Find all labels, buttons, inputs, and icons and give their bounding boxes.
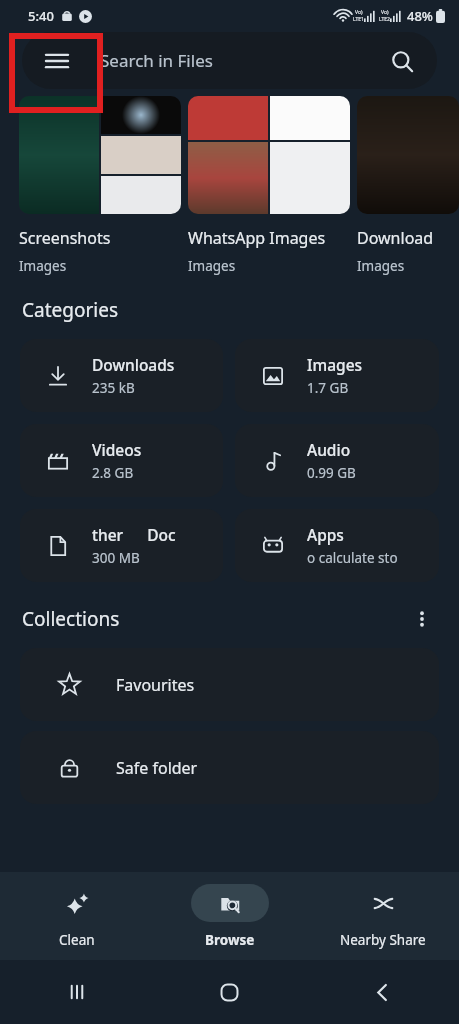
staticText: 1.7 GB [307,379,349,397]
staticText: Audio [307,439,351,460]
staticText: Vo) [381,9,389,16]
staticText: ther Doc [92,524,176,545]
staticText: LTE1 [353,16,364,23]
staticText: Download [357,227,434,249]
staticText: Vo) [355,9,363,16]
staticText: Images [188,257,236,275]
button[interactable]: Images [235,339,439,412]
staticText: 2.8 GB [92,464,134,482]
button[interactable]: Nearby Share [306,872,459,960]
staticText: Search in Files [100,49,213,72]
button[interactable]: Videos [20,424,223,497]
button[interactable]: Safe folder [20,731,439,804]
button[interactable]: Downloads [20,339,223,412]
staticText: Images [357,257,405,275]
button[interactable]: More options [407,604,437,634]
staticText: Apps [307,524,344,545]
button[interactable]: Open navigation menu [22,32,437,89]
button[interactable]: Open navigation menu [44,48,70,74]
staticText: 300 MB [92,549,140,567]
staticText: Categories [22,297,118,323]
button[interactable]: WhatsApp Images [188,96,350,275]
staticText: Images [19,257,67,275]
button[interactable]: Screenshots [19,96,181,275]
button[interactable]: Search [389,48,415,74]
staticText: Favourites [116,674,195,696]
staticText: 235 kB [92,379,135,397]
button[interactable]: ther Doc [20,509,223,582]
staticText: WhatsApp Images [188,227,326,249]
staticText: Downloads [92,354,175,375]
button[interactable]: Apps [235,509,439,582]
staticText: Screenshots [19,227,111,249]
staticText: 0.99 GB [307,464,356,482]
button[interactable]: Browse [153,872,306,960]
button[interactable]: Favourites [20,648,439,721]
staticText: LTE2 [379,16,390,23]
staticText: Collections [22,606,120,632]
staticText: Browse [205,931,255,949]
staticText: 48% [407,7,433,25]
staticText: Images [307,354,363,375]
staticText: Videos [92,439,142,460]
staticText: 5:40 [28,7,54,25]
button[interactable]: Home [153,960,306,1024]
staticText: Safe folder [116,757,198,779]
staticText: o calculate sto [307,549,398,567]
button[interactable]: Download [357,96,459,275]
staticText: Clean [59,931,95,949]
staticText: Nearby Share [340,931,426,949]
button[interactable]: Recents [0,960,153,1024]
button[interactable]: Audio [235,424,439,497]
button[interactable]: Clean [0,872,153,960]
button[interactable]: Back [306,960,459,1024]
